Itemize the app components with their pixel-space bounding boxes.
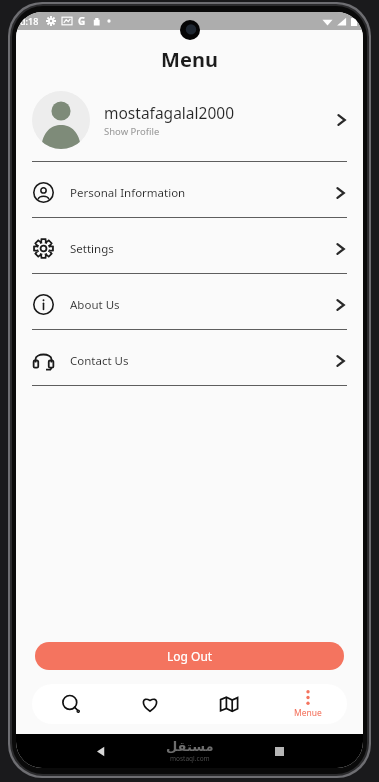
button[interactable]: Log Out: [35, 642, 344, 670]
staticText: mostaql.com: [170, 754, 210, 763]
button[interactable]: Favorites: [110, 684, 189, 724]
button[interactable]: Personal Information: [16, 182, 363, 217]
staticText: مستقل: [166, 739, 214, 754]
staticText: About Us: [70, 297, 335, 313]
staticText: Menue: [294, 707, 322, 719]
staticText: Log Out: [167, 648, 213, 664]
staticText: mostafagalal2000: [104, 102, 234, 123]
button[interactable]: Map: [189, 684, 268, 724]
button[interactable]: Recents: [271, 743, 287, 759]
staticText: Show Profile: [104, 125, 160, 138]
button[interactable]: Search: [32, 684, 110, 724]
staticText: Contact Us: [70, 353, 335, 369]
staticText: G: [78, 14, 86, 28]
button[interactable]: About Us: [16, 294, 363, 329]
staticText: Personal Information: [70, 185, 335, 201]
button[interactable]: Menue: [268, 684, 347, 724]
button[interactable]: Contact Us: [16, 350, 363, 385]
button[interactable]: Back: [92, 743, 108, 759]
staticText: Settings: [70, 241, 335, 257]
button[interactable]: mostafagalal2000: [16, 87, 363, 153]
button[interactable]: Settings: [16, 238, 363, 273]
staticText: d:18: [20, 15, 39, 27]
staticText: Menu: [16, 46, 363, 73]
